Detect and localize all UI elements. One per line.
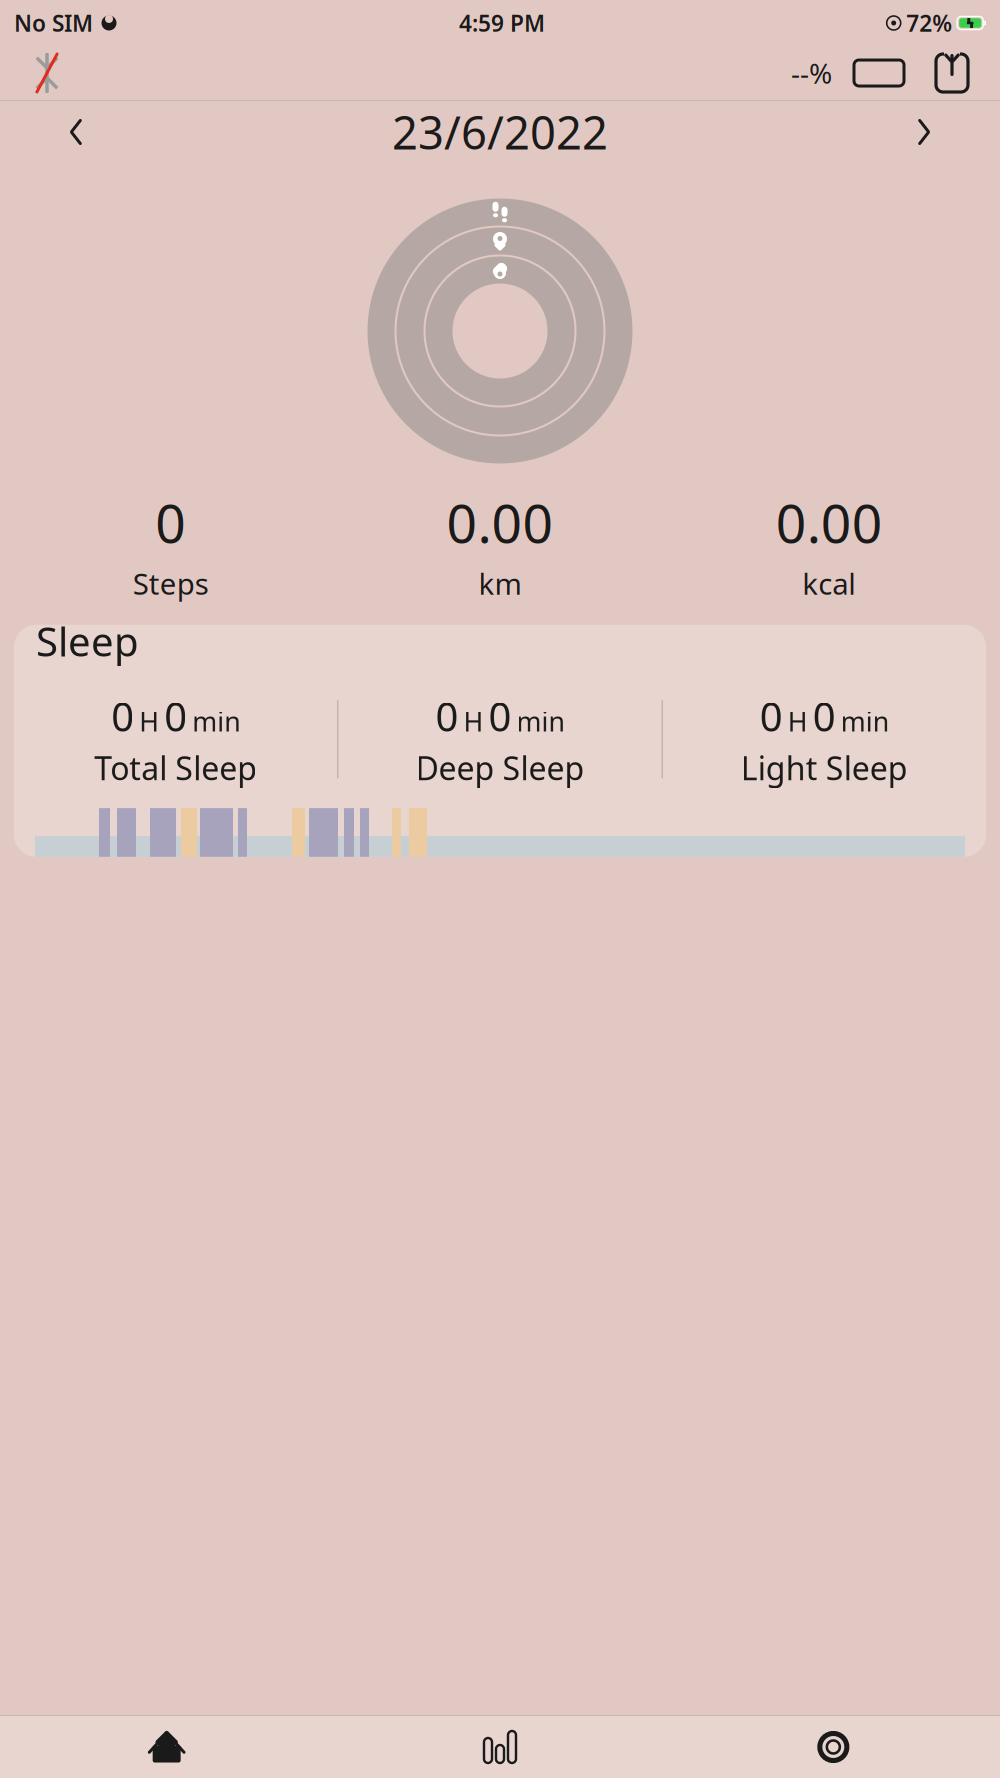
staticText: 72%: [906, 8, 952, 38]
button[interactable]: Statistics: [333, 1716, 667, 1778]
button[interactable]: Bluetooth disconnected: [22, 46, 72, 100]
button[interactable]: Home: [0, 1716, 333, 1778]
staticText: Total Sleep: [94, 747, 257, 789]
staticText: 0.00: [446, 487, 553, 558]
button[interactable]: Previous day: [40, 101, 112, 163]
staticText: min: [516, 704, 564, 739]
staticText: Deep Sleep: [415, 747, 584, 789]
staticText: Light Sleep: [741, 747, 908, 789]
staticText: H: [788, 704, 808, 739]
staticText: 0: [813, 689, 836, 743]
staticText: H: [139, 704, 159, 739]
staticText: 0: [760, 689, 783, 743]
button[interactable]: Settings: [667, 1716, 1000, 1778]
staticText: min: [192, 704, 240, 739]
staticText: H: [463, 704, 483, 739]
staticText: Sleep: [36, 614, 139, 667]
staticText: km: [478, 564, 521, 603]
staticText: --%: [791, 54, 832, 92]
staticText: 4:59 PM: [459, 8, 545, 38]
staticText: kcal: [802, 564, 856, 603]
staticText: No SIM: [14, 8, 93, 38]
staticText: 23/6/2022: [392, 102, 608, 162]
staticText: min: [841, 704, 889, 739]
staticText: 0: [155, 487, 186, 558]
button[interactable]: Next day: [888, 101, 960, 163]
staticText: 0.00: [776, 487, 883, 558]
staticText: 0: [435, 689, 458, 743]
staticText: Steps: [133, 564, 209, 603]
button[interactable]: Share: [926, 46, 978, 100]
staticText: 0: [164, 689, 187, 743]
staticText: 0: [488, 689, 511, 743]
staticText: 0: [111, 689, 134, 743]
